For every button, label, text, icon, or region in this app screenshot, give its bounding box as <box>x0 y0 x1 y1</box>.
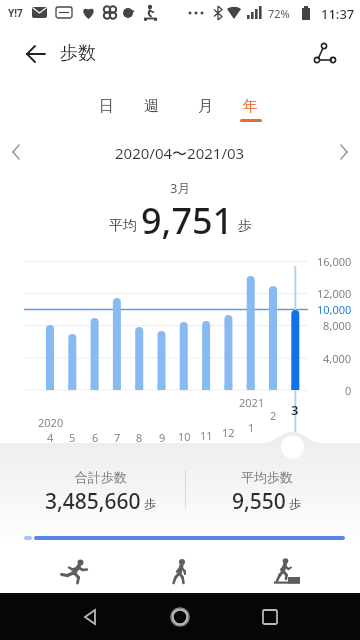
staticText: 年 <box>243 97 258 116</box>
staticText: 7 <box>114 430 121 445</box>
button[interactable] <box>162 556 198 590</box>
staticText: 9 <box>159 430 166 445</box>
button[interactable]: 年 <box>234 92 266 120</box>
staticText: 3,485,660 <box>45 487 141 513</box>
staticText: 9,751 <box>141 196 234 240</box>
staticText: 平均歩数 <box>241 469 293 485</box>
button[interactable]: 日 <box>90 92 122 120</box>
staticText: 10,000 <box>317 302 352 317</box>
button[interactable] <box>306 36 342 70</box>
staticText: 6 <box>92 430 99 445</box>
staticText: 16,000 <box>317 254 352 269</box>
staticText: 4,000 <box>323 351 352 366</box>
button[interactable] <box>330 138 358 166</box>
staticText: 歩数 <box>60 42 96 65</box>
staticText: 3 <box>291 401 299 419</box>
staticText: 歩 <box>141 495 157 511</box>
staticText: 9,550 <box>232 487 286 513</box>
staticText: 3月 <box>170 179 191 197</box>
staticText: 10 <box>178 429 191 444</box>
staticText: 平均 <box>109 215 141 234</box>
staticText: 歩 <box>286 495 302 511</box>
staticText: 72% <box>268 6 290 21</box>
staticText: 2020 <box>38 415 64 430</box>
staticText: 11:37 <box>321 5 355 23</box>
staticText: 合計歩数 <box>75 469 127 485</box>
button[interactable] <box>56 556 92 590</box>
staticText: 2021 <box>239 395 265 410</box>
staticText: 5 <box>69 430 76 445</box>
staticText: 月 <box>198 97 213 116</box>
staticText: 2020/04〜2021/03 <box>115 143 245 163</box>
staticText: Y!7 <box>8 6 23 20</box>
button[interactable] <box>2 138 30 166</box>
staticText: 0 <box>345 383 352 398</box>
staticText: 2 <box>270 408 277 423</box>
staticText: 4 <box>47 430 54 445</box>
button[interactable] <box>252 599 288 635</box>
staticText: 12,000 <box>317 286 352 301</box>
button[interactable]: 週 <box>135 92 167 120</box>
staticText: 歩 <box>234 215 252 234</box>
staticText: 11 <box>200 428 213 443</box>
staticText: 12 <box>222 425 235 440</box>
staticText: 8 <box>136 430 143 445</box>
button[interactable] <box>162 599 198 635</box>
staticText: 8,000 <box>323 318 352 333</box>
staticText: 日 <box>99 97 114 116</box>
button[interactable] <box>18 40 54 68</box>
button[interactable] <box>72 599 108 635</box>
staticText: 1 <box>248 420 255 435</box>
button[interactable]: 月 <box>189 92 221 120</box>
button[interactable] <box>269 556 305 590</box>
staticText: 週 <box>144 97 159 116</box>
